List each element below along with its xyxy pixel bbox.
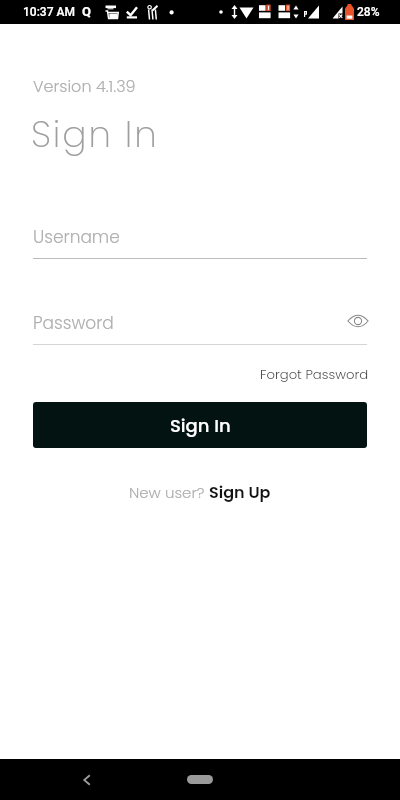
button[interactable]: Back (74, 767, 100, 793)
staticText: Sign In (31, 109, 159, 159)
staticText: New user? (129, 482, 209, 503)
staticText: Q (82, 4, 91, 19)
button[interactable]: Show password (345, 308, 371, 334)
button[interactable]: Sign Up (209, 481, 271, 503)
staticText: 10:37 AM (23, 5, 75, 19)
staticText: 28% (357, 5, 380, 19)
button[interactable]: Home (187, 775, 213, 784)
staticText: Password (33, 311, 114, 335)
staticText: Forgot Password (260, 365, 369, 383)
button[interactable]: Sign In (33, 402, 367, 448)
staticText: Sign In (170, 413, 231, 438)
staticText: Sign Up (209, 481, 271, 503)
staticText: Version 4.1.39 (33, 75, 136, 97)
staticText: Username (33, 225, 120, 249)
button[interactable]: Forgot Password (260, 365, 369, 383)
